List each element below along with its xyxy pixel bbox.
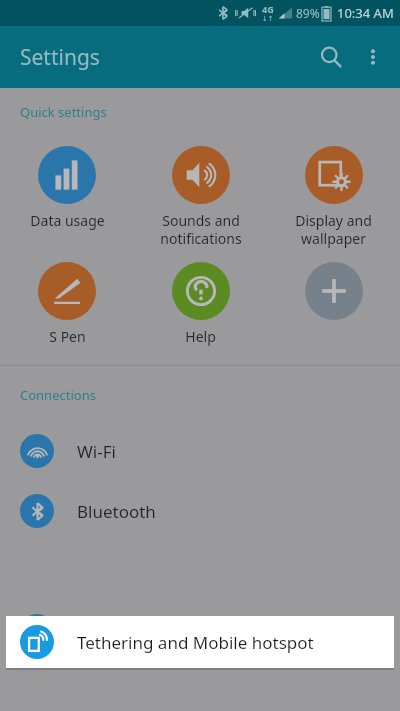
button[interactable] <box>267 260 400 322</box>
staticText: Wi-Fi <box>77 440 116 463</box>
staticText: Quick settings <box>20 103 107 121</box>
button[interactable]: Help <box>134 260 267 348</box>
staticText: Bluetooth <box>77 500 156 523</box>
staticText: Connections <box>20 386 96 404</box>
staticText: Settings <box>20 43 100 72</box>
staticText: 4G <box>262 3 274 15</box>
button[interactable]: Display and wallpaper <box>267 144 400 250</box>
button[interactable]: Data usage <box>0 144 134 232</box>
staticText: ↓↑ <box>262 15 274 23</box>
staticText: Display and wallpaper <box>295 211 372 248</box>
button[interactable]: Flight mode <box>0 601 400 661</box>
button[interactable]: Tethering and Mobile hotspot <box>6 616 394 668</box>
staticText: Data usage <box>30 211 105 230</box>
button[interactable]: Search <box>314 40 348 74</box>
button[interactable]: More options <box>356 40 390 74</box>
staticText: Sounds and notifications <box>160 211 242 248</box>
staticText: Flight mode <box>77 620 173 643</box>
button[interactable]: Bluetooth <box>0 481 400 541</box>
button[interactable]: Wi-Fi <box>0 421 400 481</box>
staticText: 10:34 AM <box>337 4 394 22</box>
staticText: Help <box>185 327 216 346</box>
button[interactable]: S Pen <box>0 260 134 348</box>
staticText: S Pen <box>49 327 86 346</box>
staticText: 89% <box>296 5 320 21</box>
button[interactable]: Sounds and notifications <box>134 144 267 250</box>
staticText: Tethering and Mobile hotspot <box>77 631 314 654</box>
